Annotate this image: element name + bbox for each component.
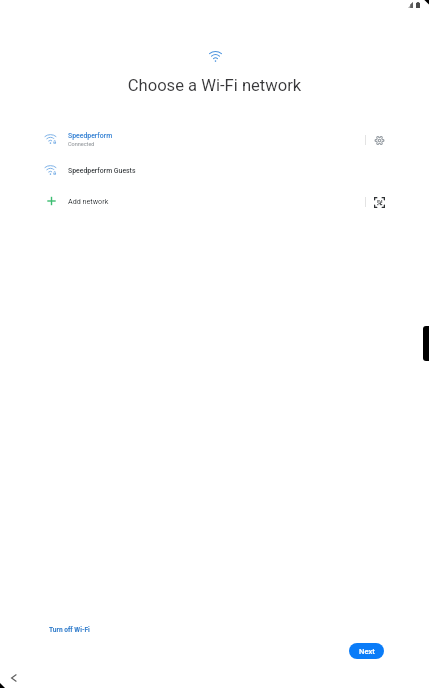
staticText: Connected [68, 141, 95, 147]
button[interactable]: Scan QR code [370, 193, 388, 211]
button[interactable]: Network settings [370, 131, 388, 149]
staticText: Choose a Wi-Fi network [0, 76, 429, 95]
button[interactable]: Turn off Wi-Fi [43, 622, 96, 638]
button[interactable]: Speedperform [0, 124, 429, 155]
button[interactable]: Back [4, 668, 24, 688]
staticText: Speedperform [68, 132, 113, 140]
button[interactable]: Next [349, 643, 384, 659]
staticText: Add network [68, 197, 109, 205]
staticText: Turn off Wi-Fi [49, 626, 90, 634]
staticText: Speedperform Guests [68, 167, 136, 175]
staticText: Next [359, 647, 375, 656]
button[interactable]: Speedperform Guests [0, 155, 429, 186]
button[interactable]: Add network [0, 186, 429, 217]
